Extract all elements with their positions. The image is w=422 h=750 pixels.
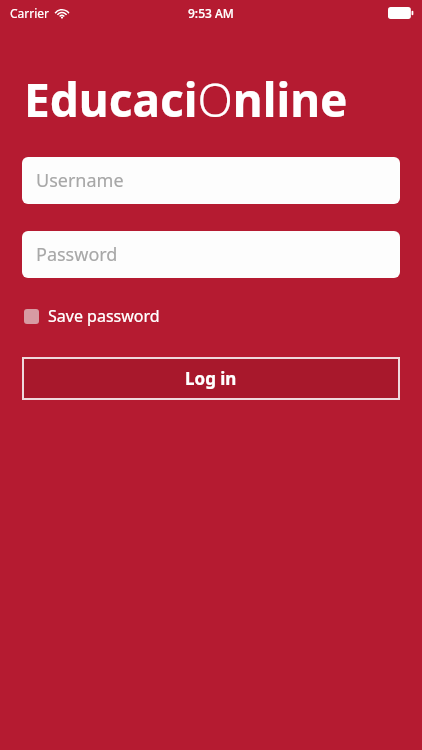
button[interactable]: Username (22, 157, 400, 204)
staticText: Carrier (10, 5, 50, 21)
button[interactable]: Save password (22, 302, 162, 330)
staticText: Log in (185, 367, 237, 390)
staticText: Save password (48, 305, 160, 327)
staticText: 9:53 AM (188, 5, 234, 21)
button[interactable]: Password (22, 231, 400, 278)
staticText: Password (36, 242, 118, 267)
staticText: Username (36, 168, 124, 193)
staticText: EducaciOnline (24, 68, 348, 131)
other: Wi-Fi signal (55, 8, 69, 19)
button[interactable]: Log in (22, 357, 400, 400)
other: Battery full (388, 7, 414, 19)
